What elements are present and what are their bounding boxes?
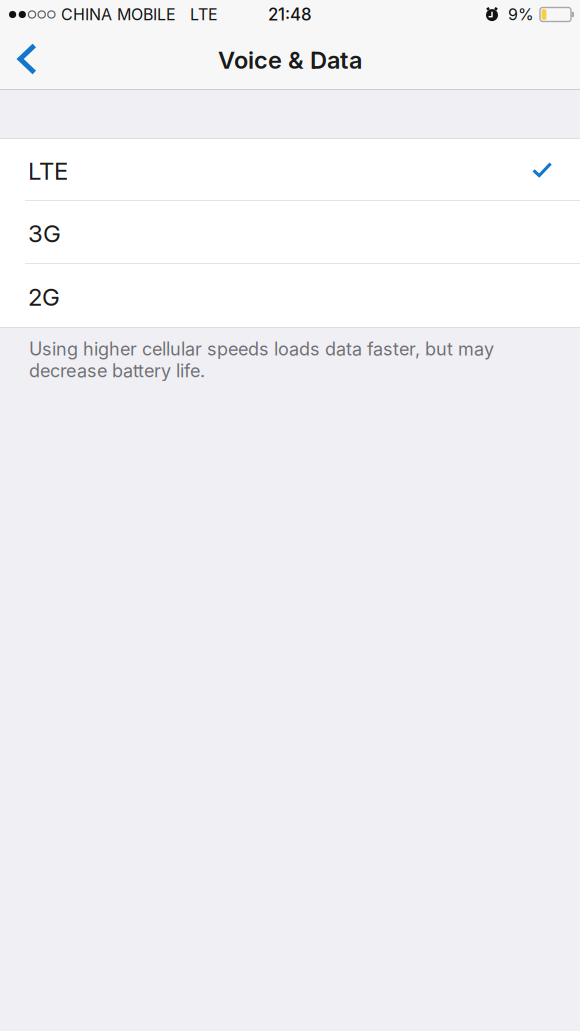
staticText: 21:48 [268, 4, 312, 25]
button[interactable]: 3G [0, 201, 580, 264]
staticText: Using higher cellular speeds loads data … [29, 338, 494, 382]
button[interactable]: 2G [0, 264, 580, 327]
staticText: Voice & Data [218, 46, 362, 74]
staticText: LTE [28, 156, 68, 185]
staticText: LTE [190, 5, 218, 24]
staticText: 3G [28, 219, 61, 248]
button[interactable]: Back [0, 29, 54, 89]
staticText: 9% [508, 5, 534, 24]
staticText: CHINA MOBILE [61, 5, 176, 24]
button[interactable]: LTE [0, 139, 580, 201]
staticText: 2G [28, 282, 60, 311]
